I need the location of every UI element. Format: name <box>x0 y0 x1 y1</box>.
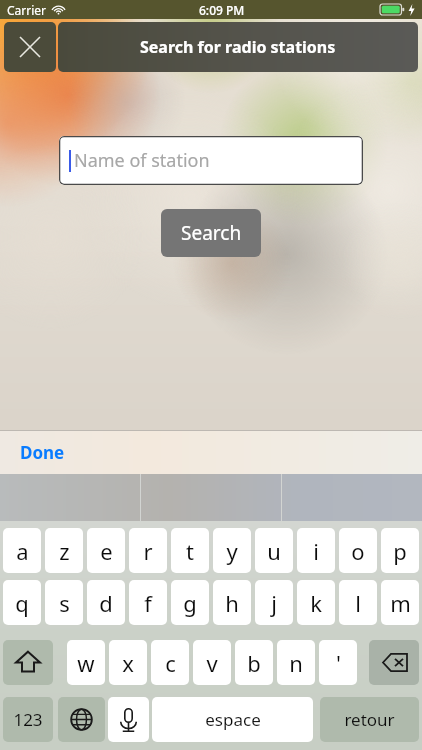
staticText: Done <box>20 441 65 464</box>
staticText: y <box>226 536 238 566</box>
staticText: Search for radio stations <box>140 36 336 58</box>
button[interactable]: z <box>45 528 83 573</box>
staticText: a <box>16 536 29 566</box>
button[interactable]: e <box>87 528 125 573</box>
button[interactable]: Done <box>20 430 65 474</box>
staticText: t <box>186 536 194 566</box>
button[interactable]: c <box>151 640 189 685</box>
button[interactable]: s <box>45 580 83 625</box>
staticText: 123 <box>13 708 43 731</box>
staticText: h <box>225 588 239 618</box>
staticText: b <box>247 648 261 678</box>
button[interactable]: Next keyboard <box>58 697 105 742</box>
button[interactable]: Shift <box>3 640 53 685</box>
button[interactable]: t <box>171 528 209 573</box>
staticText: f <box>144 588 152 618</box>
staticText: espace <box>205 708 261 731</box>
staticText: Carrier <box>7 2 47 18</box>
staticText: d <box>99 588 113 618</box>
button[interactable]: k <box>297 580 335 625</box>
staticText: k <box>310 588 322 618</box>
staticText: c <box>165 648 176 678</box>
button[interactable]: Search for radio stations <box>58 22 418 72</box>
button[interactable]: a <box>3 528 41 573</box>
button[interactable]: p <box>381 528 419 573</box>
button[interactable]: y <box>213 528 251 573</box>
staticText: e <box>100 536 113 566</box>
staticText: 6:09 PM <box>199 2 245 18</box>
button[interactable]: x <box>109 640 147 685</box>
button[interactable]: Name of station <box>59 136 363 185</box>
button[interactable]: r <box>129 528 167 573</box>
button[interactable]: h <box>213 580 251 625</box>
staticText: l <box>355 588 361 618</box>
staticText: ' <box>336 648 341 678</box>
button[interactable]: o <box>339 528 377 573</box>
staticText: o <box>351 536 365 566</box>
staticText: u <box>267 536 281 566</box>
staticText: w <box>77 648 95 678</box>
button[interactable]: Backspace <box>369 640 419 685</box>
button[interactable]: n <box>277 640 315 685</box>
button[interactable]: Search <box>161 209 261 257</box>
staticText: i <box>313 536 319 566</box>
button[interactable]: g <box>171 580 209 625</box>
button[interactable]: Dictate <box>108 697 149 742</box>
staticText: v <box>206 648 218 678</box>
button[interactable]: m <box>381 580 419 625</box>
button[interactable]: v <box>193 640 231 685</box>
staticText: g <box>183 588 197 618</box>
staticText: j <box>271 588 277 618</box>
button[interactable]: Close <box>4 22 56 72</box>
staticText: s <box>59 588 70 618</box>
button[interactable]: d <box>87 580 125 625</box>
button[interactable]: i <box>297 528 335 573</box>
button[interactable]: u <box>255 528 293 573</box>
button[interactable]: espace <box>152 697 313 742</box>
button[interactable]: w <box>67 640 105 685</box>
button[interactable]: q <box>3 580 41 625</box>
button[interactable]: l <box>339 580 377 625</box>
button[interactable]: f <box>129 580 167 625</box>
staticText: retour <box>344 708 395 731</box>
button[interactable]: 123 <box>3 697 53 742</box>
staticText: r <box>143 536 153 566</box>
staticText: z <box>59 536 70 566</box>
staticText: x <box>122 648 134 678</box>
button[interactable]: j <box>255 580 293 625</box>
button[interactable]: ' <box>319 640 357 685</box>
staticText: p <box>393 536 407 566</box>
button[interactable]: retour <box>320 697 419 742</box>
staticText: m <box>390 588 411 618</box>
staticText: n <box>289 648 303 678</box>
staticText: q <box>15 588 29 618</box>
button[interactable]: b <box>235 640 273 685</box>
staticText: Search <box>181 220 242 246</box>
staticText: Name of station <box>74 148 210 173</box>
